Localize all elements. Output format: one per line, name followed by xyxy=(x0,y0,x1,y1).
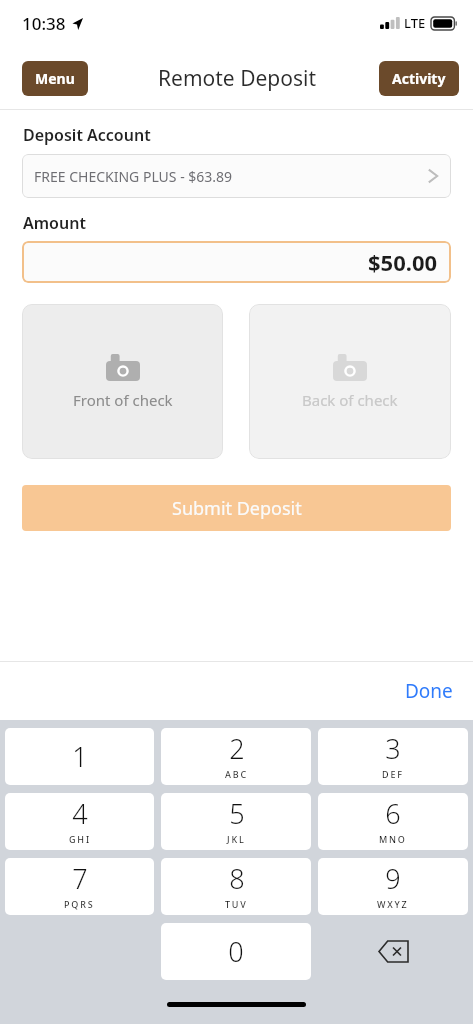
staticText: 6 xyxy=(385,795,401,832)
staticText: MNO xyxy=(379,833,407,845)
button[interactable]: 6 xyxy=(318,793,468,850)
staticText: Menu xyxy=(35,69,75,88)
staticText: FREE CHECKING PLUS - $63.89 xyxy=(34,167,427,186)
button[interactable]: 8 xyxy=(161,858,311,915)
staticText: 4 xyxy=(72,795,88,832)
staticText: Done xyxy=(405,678,453,704)
button[interactable]: 3 xyxy=(318,728,468,785)
staticText: 1 xyxy=(72,738,88,775)
button[interactable]: Submit Deposit xyxy=(22,485,451,531)
button[interactable]: Menu xyxy=(22,61,88,96)
button[interactable]: 7 xyxy=(5,858,154,915)
staticText: GHI xyxy=(69,833,91,845)
staticText: Front of check xyxy=(73,390,173,410)
staticText: 10:38 xyxy=(22,12,66,35)
button[interactable]: Back of check xyxy=(249,304,451,459)
button[interactable]: 0 xyxy=(161,923,311,980)
staticText: Back of check xyxy=(302,390,398,410)
staticText: 3 xyxy=(385,730,401,767)
staticText: 0 xyxy=(228,933,244,970)
staticText: Submit Deposit xyxy=(172,496,302,521)
staticText: 5 xyxy=(229,795,245,832)
staticText: TUV xyxy=(225,898,248,910)
staticText: 2 xyxy=(229,730,245,767)
button[interactable]: $50.00 xyxy=(22,241,451,283)
button[interactable]: 1 xyxy=(5,728,154,785)
staticText: PQRS xyxy=(64,898,95,910)
staticText: DEF xyxy=(382,768,404,780)
staticText: Deposit Account xyxy=(23,124,151,146)
staticText: LTE xyxy=(404,14,426,32)
staticText: 7 xyxy=(72,860,88,897)
button[interactable]: Activity xyxy=(379,61,459,96)
button[interactable]: 4 xyxy=(5,793,154,850)
button[interactable]: 9 xyxy=(318,858,468,915)
staticText: JKL xyxy=(227,833,246,845)
button[interactable]: Front of check xyxy=(22,304,223,459)
staticText: 8 xyxy=(229,860,245,897)
button[interactable]: FREE CHECKING PLUS - $63.89 xyxy=(22,154,451,198)
staticText: Remote Deposit xyxy=(158,64,316,93)
staticText: Amount xyxy=(23,212,86,234)
staticText: $50.00 xyxy=(368,247,438,277)
staticText: 9 xyxy=(385,860,401,897)
button[interactable]: 2 xyxy=(161,728,311,785)
staticText: ABC xyxy=(225,768,248,780)
button[interactable]: Done xyxy=(385,670,473,712)
staticText: WXYZ xyxy=(377,898,409,910)
staticText: Activity xyxy=(392,69,446,88)
button[interactable]: Delete xyxy=(318,923,468,980)
button[interactable]: 5 xyxy=(161,793,311,850)
